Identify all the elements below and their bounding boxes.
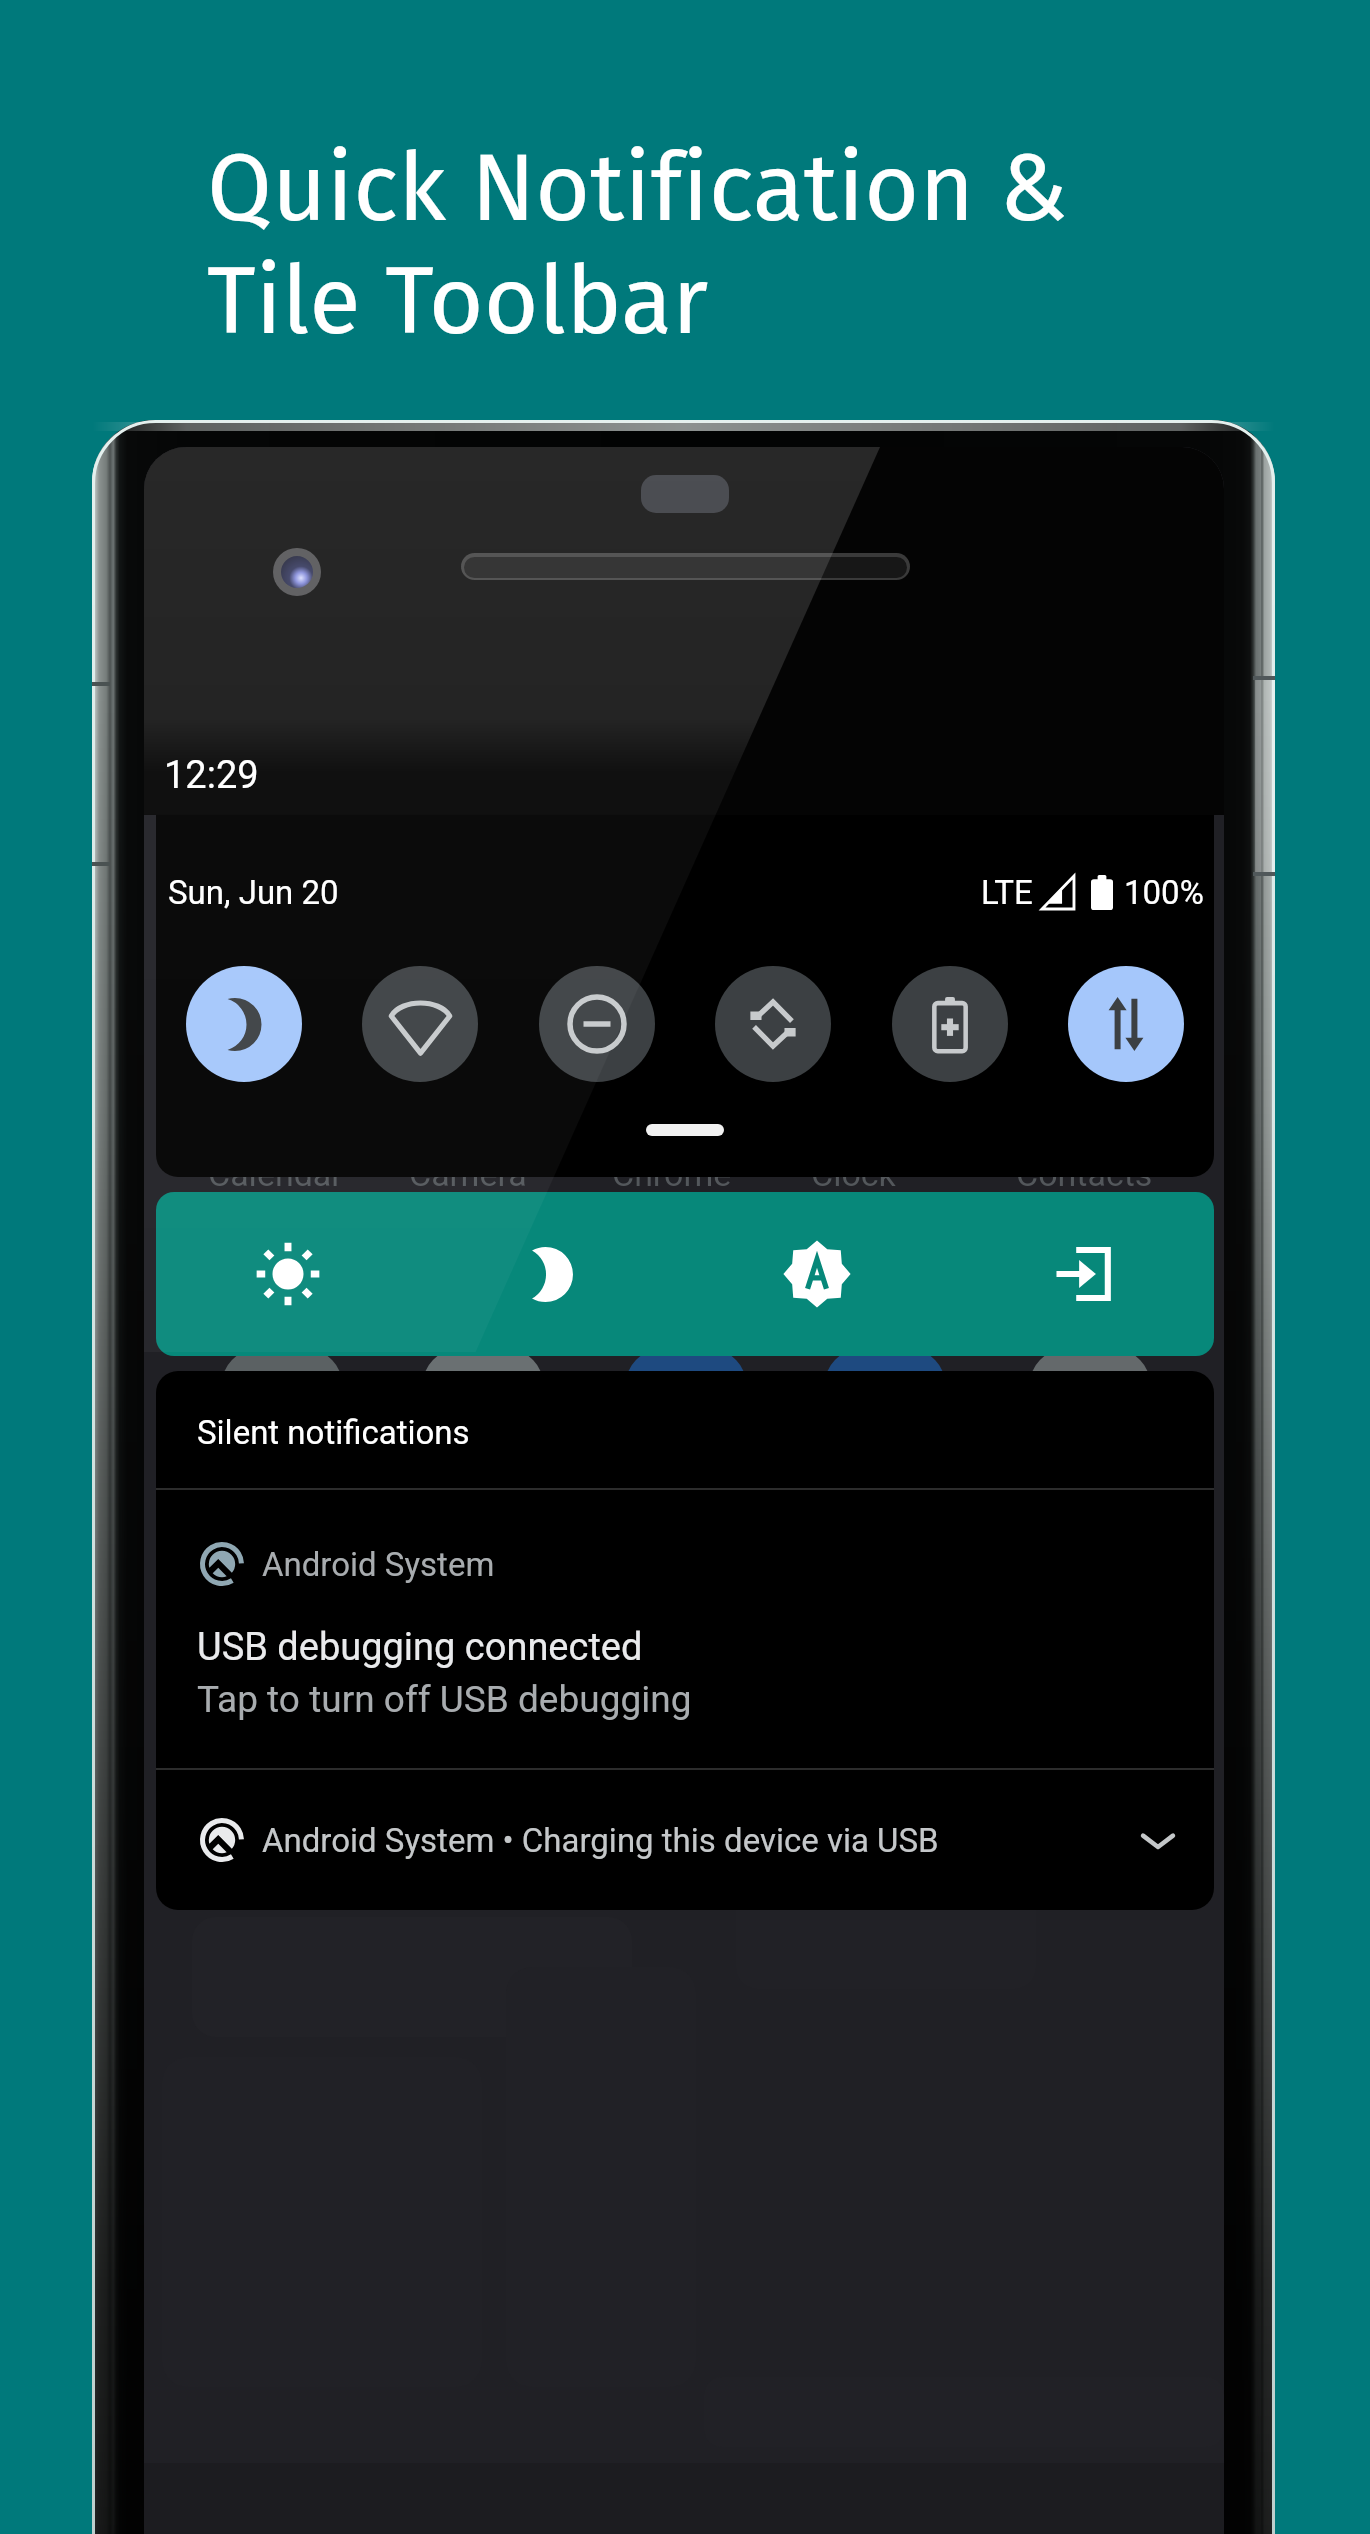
staticText: Android System	[262, 1545, 495, 1584]
staticText: 100%	[1124, 873, 1204, 912]
staticText: Android System • Charging this device vi…	[262, 1821, 939, 1860]
button[interactable]: Silent notifications	[156, 1371, 1214, 1488]
button[interactable]: Wi-Fi	[362, 966, 478, 1082]
button[interactable]: Do not disturb	[539, 966, 655, 1082]
staticText: Contacts	[1016, 1154, 1153, 1194]
button[interactable]: Dark theme	[186, 966, 302, 1082]
staticText: Silent notifications	[197, 1413, 470, 1452]
staticText: Sun, Jun 20	[168, 873, 339, 912]
button[interactable]: Auto-rotate	[715, 966, 831, 1082]
staticText: Chrome	[612, 1154, 732, 1194]
staticText: Camera	[409, 1154, 527, 1194]
staticText: Clock	[811, 1154, 896, 1194]
button[interactable]: Brightness	[156, 1192, 420, 1356]
staticText: Quick Notification & Tile Toolbar	[207, 132, 1068, 358]
staticText: Tap to turn off USB debugging	[197, 1678, 692, 1721]
staticText: Calendar	[208, 1154, 343, 1194]
button[interactable]: Auto brightness	[684, 1192, 949, 1356]
staticText: 12:29	[164, 753, 259, 798]
staticText: USB debugging connected	[197, 1625, 643, 1670]
button[interactable]: Exit	[949, 1192, 1214, 1356]
button[interactable]: Android System • Charging this device vi…	[156, 1770, 1214, 1910]
button[interactable]: Android System	[156, 1490, 1214, 1768]
button[interactable]: Mobile data	[1068, 966, 1184, 1082]
button[interactable]: Night light	[420, 1192, 684, 1356]
button[interactable]: Battery saver	[892, 966, 1008, 1082]
staticText: LTE	[981, 873, 1033, 912]
